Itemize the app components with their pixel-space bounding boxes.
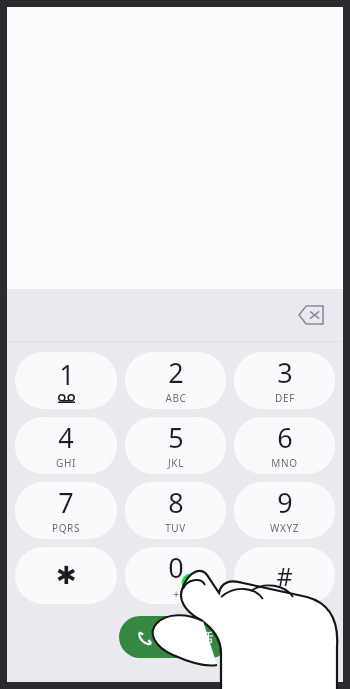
staticText: + (173, 586, 180, 601)
staticText: 5 (168, 419, 184, 456)
button[interactable]: 6 (234, 417, 335, 474)
button[interactable]: ✱ (15, 547, 117, 604)
button[interactable]: 5 (125, 417, 226, 474)
button[interactable]: 音声通話 (119, 616, 231, 658)
staticText: JKL (168, 456, 184, 470)
staticText: 9 (277, 484, 293, 521)
staticText: ✱ (56, 561, 77, 590)
button[interactable]: 8 (125, 482, 226, 539)
staticText: 0 (168, 549, 184, 586)
button[interactable]: Backspace (289, 293, 333, 337)
button[interactable]: 1 (15, 352, 117, 409)
button[interactable]: 2 (125, 352, 226, 409)
staticText: WXYZ (270, 521, 299, 535)
staticText: GHI (56, 456, 76, 470)
staticText: 6 (277, 419, 293, 456)
staticText: 3 (277, 354, 293, 391)
button[interactable]: 4 (15, 417, 117, 474)
staticText: 1 (59, 356, 75, 393)
staticText: 2 (168, 354, 184, 391)
staticText: DEF (275, 391, 295, 405)
button[interactable]: 0 (125, 547, 226, 604)
staticText: 音声通話 (161, 629, 213, 645)
staticText: ABC (165, 391, 187, 405)
button[interactable]: 3 (234, 352, 335, 409)
staticText: TUV (165, 521, 186, 535)
staticText: 7 (58, 484, 74, 521)
staticText: PQRS (52, 521, 80, 535)
staticText: MNO (271, 456, 298, 470)
button[interactable]: 7 (15, 482, 117, 539)
button[interactable]: # (234, 547, 335, 604)
staticText: 4 (58, 419, 74, 456)
button[interactable]: 9 (234, 482, 335, 539)
staticText: 8 (168, 484, 184, 521)
staticText: # (276, 559, 293, 593)
